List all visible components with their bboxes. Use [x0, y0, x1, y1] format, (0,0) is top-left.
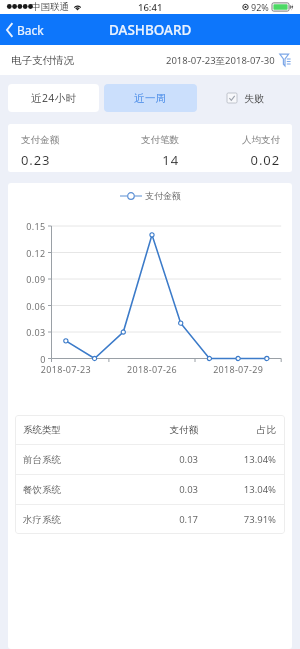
staticText: 0.03 — [120, 483, 198, 496]
staticText: 0.02 — [197, 151, 280, 169]
staticText: 前台系统 — [23, 454, 120, 466]
staticText: 占比 — [198, 424, 276, 436]
button[interactable]: 近24小时 — [8, 84, 99, 112]
button[interactable]: Back — [0, 14, 52, 45]
button[interactable]: 2018-07-23至2018-07-30 — [166, 45, 300, 75]
staticText: 近一周 — [134, 92, 167, 105]
staticText: 0.03 — [120, 453, 198, 466]
staticText: 近24小时 — [31, 91, 77, 105]
staticText: 水疗系统 — [23, 514, 120, 526]
staticText: 餐饮系统 — [23, 484, 120, 496]
staticText: 2018-07-23至2018-07-30 — [166, 54, 275, 67]
staticText: 支付金额 — [21, 134, 102, 146]
staticText: Back — [17, 22, 44, 38]
staticText: 0.23 — [21, 151, 102, 169]
staticText: 系统类型 — [23, 424, 120, 436]
staticText: 73.91% — [198, 513, 276, 526]
staticText: 14 — [102, 151, 179, 169]
staticText: 16:41 — [138, 1, 163, 14]
staticText: 支付额 — [120, 424, 198, 436]
staticText: 支付笔数 — [102, 134, 179, 146]
staticText: 92% — [251, 1, 269, 13]
button[interactable]: 失败 — [223, 84, 268, 112]
staticText: 支付金额 — [145, 190, 181, 201]
staticText: 人均支付 — [197, 134, 280, 146]
staticText: 电子支付情况 — [11, 54, 74, 67]
staticText: 13.04% — [198, 483, 276, 496]
staticText: 0.17 — [120, 513, 198, 526]
staticText: DASHBOARD — [109, 21, 192, 39]
other: Filter — [279, 53, 293, 68]
staticText: 失败 — [244, 92, 264, 105]
staticText: 中国联通 — [31, 1, 69, 13]
staticText: 13.04% — [198, 453, 276, 466]
button[interactable]: 近一周 — [104, 84, 197, 112]
